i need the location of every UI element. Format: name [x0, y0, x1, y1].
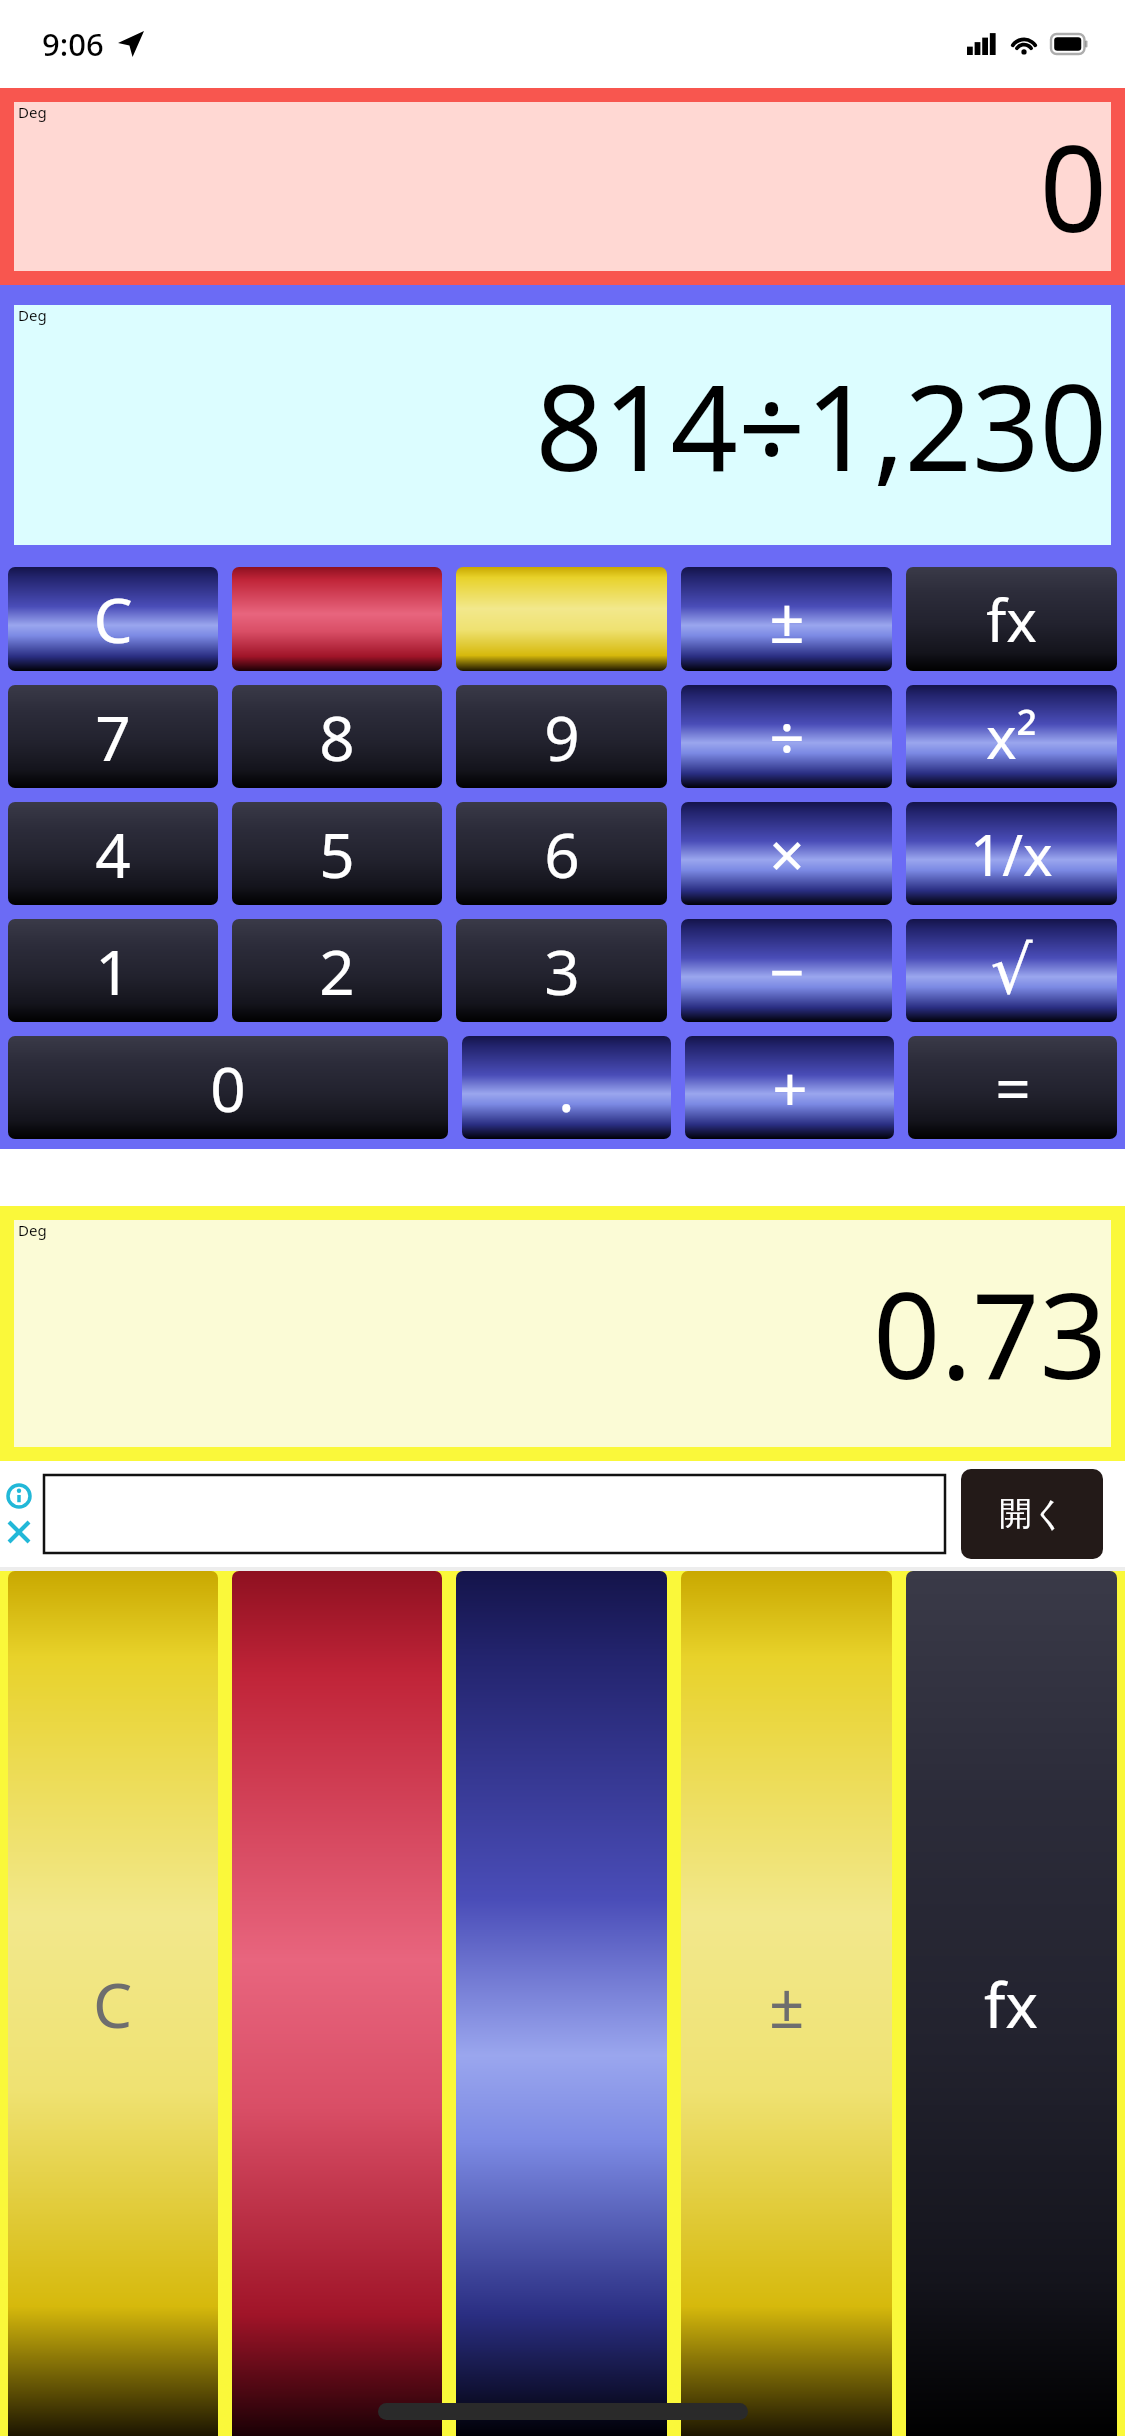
- staticText: ×: [769, 812, 805, 896]
- staticText: √: [990, 932, 1033, 1009]
- staticText: ÷: [769, 695, 805, 779]
- staticText: ±: [769, 1962, 805, 2046]
- staticText: 6: [544, 812, 580, 896]
- staticText: 4: [95, 812, 131, 896]
- button[interactable]: x²: [906, 685, 1117, 788]
- button[interactable]: ±: [681, 1571, 892, 2436]
- button[interactable]: 6: [456, 802, 667, 905]
- button[interactable]: Yellow memory: [456, 567, 667, 671]
- staticText: C: [93, 1962, 133, 2046]
- button[interactable]: 開く: [961, 1469, 1103, 1559]
- button[interactable]: 5: [232, 802, 442, 905]
- staticText: 0.73: [14, 1253, 1107, 1414]
- staticText: 0: [210, 1046, 246, 1130]
- button[interactable]: ±: [681, 567, 892, 671]
- staticText: +: [772, 1046, 808, 1130]
- button[interactable]: C: [8, 1571, 218, 2436]
- staticText: −: [769, 929, 805, 1013]
- staticText: fx: [986, 580, 1037, 659]
- button[interactable]: 4: [8, 802, 218, 905]
- staticText: 8: [319, 695, 355, 779]
- button[interactable]: fx: [906, 567, 1117, 671]
- staticText: 1: [95, 929, 131, 1013]
- button[interactable]: +: [685, 1036, 894, 1139]
- staticText: Deg: [18, 305, 47, 325]
- staticText: 9: [544, 695, 580, 779]
- staticText: =: [995, 1046, 1031, 1130]
- staticText: 開く: [999, 1493, 1066, 1535]
- button[interactable]: 8: [232, 685, 442, 788]
- button[interactable]: √: [906, 919, 1117, 1022]
- staticText: C: [93, 577, 133, 661]
- button[interactable]: 9: [456, 685, 667, 788]
- staticText: Deg: [18, 1220, 47, 1240]
- button[interactable]: 1: [8, 919, 218, 1022]
- button[interactable]: [44, 1475, 945, 1553]
- button[interactable]: ÷: [681, 685, 892, 788]
- button[interactable]: [456, 1571, 667, 2436]
- staticText: 9:06: [42, 23, 104, 65]
- staticText: .: [558, 1046, 575, 1130]
- staticText: 7: [95, 695, 131, 779]
- button[interactable]: [232, 1571, 442, 2436]
- staticText: 0: [14, 106, 1107, 267]
- staticText: x²: [986, 697, 1037, 776]
- button[interactable]: Ad info: [6, 1483, 32, 1509]
- staticText: 1/x: [970, 816, 1053, 892]
- staticText: 2: [319, 929, 355, 1013]
- button[interactable]: 2: [232, 919, 442, 1022]
- button[interactable]: Close ad: [6, 1519, 32, 1545]
- button[interactable]: Red memory: [232, 567, 442, 671]
- staticText: ±: [769, 577, 805, 661]
- staticText: 3: [544, 929, 580, 1013]
- button[interactable]: −: [681, 919, 892, 1022]
- staticText: Deg: [18, 102, 47, 122]
- button[interactable]: =: [908, 1036, 1117, 1139]
- staticText: fx: [984, 1962, 1039, 2046]
- button[interactable]: fx: [906, 1571, 1117, 2436]
- staticText: 814÷1,230: [14, 345, 1107, 506]
- button[interactable]: 3: [456, 919, 667, 1022]
- button[interactable]: ×: [681, 802, 892, 905]
- button[interactable]: C: [8, 567, 218, 671]
- button[interactable]: 0: [8, 1036, 448, 1139]
- button[interactable]: 1/x: [906, 802, 1117, 905]
- button[interactable]: Decimal point: [462, 1036, 671, 1139]
- button[interactable]: 7: [8, 685, 218, 788]
- staticText: 5: [319, 812, 355, 896]
